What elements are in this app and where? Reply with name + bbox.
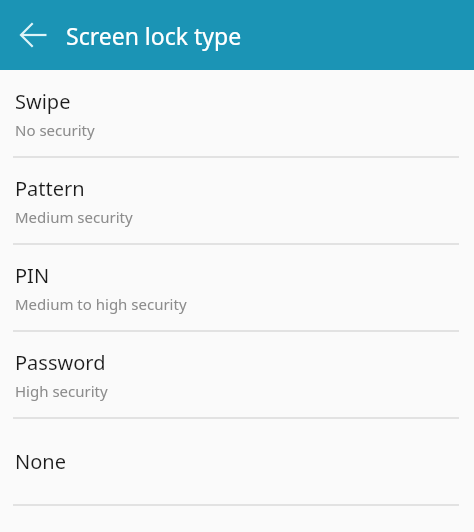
- staticText: Pattern: [15, 175, 85, 202]
- staticText: Medium security: [15, 207, 133, 227]
- button[interactable]: Navigate up: [6, 8, 60, 62]
- button[interactable]: None: [0, 419, 474, 504]
- button[interactable]: Pattern: [0, 158, 474, 243]
- staticText: Medium to high security: [15, 294, 187, 314]
- staticText: None: [15, 448, 66, 475]
- button[interactable]: Password: [0, 332, 474, 417]
- staticText: Swipe: [15, 88, 71, 115]
- button[interactable]: PIN: [0, 245, 474, 330]
- staticText: Password: [15, 349, 106, 376]
- button[interactable]: Swipe: [0, 71, 474, 156]
- staticText: Screen lock type: [66, 20, 242, 51]
- staticText: High security: [15, 381, 108, 401]
- staticText: No security: [15, 120, 95, 140]
- staticText: PIN: [15, 262, 50, 289]
